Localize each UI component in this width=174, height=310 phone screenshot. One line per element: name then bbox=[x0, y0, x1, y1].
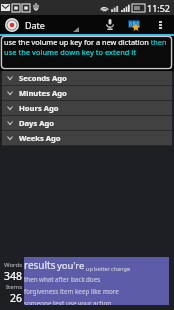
staticText: like bbox=[91, 287, 102, 296]
staticText: more bbox=[103, 287, 119, 296]
staticText: better bbox=[94, 265, 110, 272]
staticText: up bbox=[86, 265, 93, 272]
staticText: 11:52 bbox=[147, 2, 171, 14]
staticText: use the volume down key to extend it bbox=[4, 47, 137, 57]
staticText: change bbox=[111, 265, 131, 272]
staticText: after bbox=[55, 275, 70, 284]
staticText: 348 bbox=[4, 269, 23, 283]
staticText: what bbox=[39, 275, 54, 284]
staticText: Days Ago bbox=[19, 118, 55, 128]
staticText: back bbox=[71, 275, 85, 284]
button[interactable]: Date bbox=[25, 19, 45, 31]
staticText: does bbox=[86, 275, 101, 284]
button[interactable]: Record bbox=[4, 17, 19, 32]
button[interactable]: Weeks Ago bbox=[2, 131, 172, 145]
staticText: text bbox=[53, 299, 65, 305]
staticText: Seconds Ago bbox=[19, 73, 67, 83]
staticText: use the volume up key for a new dictatio… bbox=[4, 37, 167, 47]
button[interactable]: Minutes Ago bbox=[2, 86, 172, 100]
button[interactable]: More options bbox=[151, 15, 169, 34]
staticText: forgiveness bbox=[24, 287, 59, 296]
staticText: someone bbox=[24, 299, 52, 305]
button[interactable]: Voice record bbox=[100, 15, 119, 34]
button[interactable]: Hours Ago bbox=[2, 101, 172, 115]
button[interactable]: Seconds Ago bbox=[2, 71, 172, 85]
button[interactable]: Media bbox=[124, 15, 143, 34]
staticText: you're bbox=[57, 259, 85, 272]
staticText: keep bbox=[75, 287, 90, 296]
button[interactable]: Days Ago bbox=[2, 116, 172, 130]
staticText: Words bbox=[4, 261, 23, 269]
staticText: action bbox=[93, 299, 112, 305]
staticText: Date bbox=[25, 19, 45, 31]
staticText: your bbox=[78, 299, 92, 305]
staticText: Weeks Ago bbox=[19, 133, 61, 143]
staticText: results bbox=[24, 258, 56, 272]
staticText: Items bbox=[6, 283, 23, 291]
staticText: Minutes Ago bbox=[19, 88, 67, 98]
staticText: item bbox=[60, 287, 74, 296]
staticText: then bbox=[24, 275, 38, 284]
staticText: use bbox=[66, 299, 77, 305]
staticText: Hours Ago bbox=[19, 103, 59, 113]
staticText: 26 bbox=[10, 291, 23, 305]
